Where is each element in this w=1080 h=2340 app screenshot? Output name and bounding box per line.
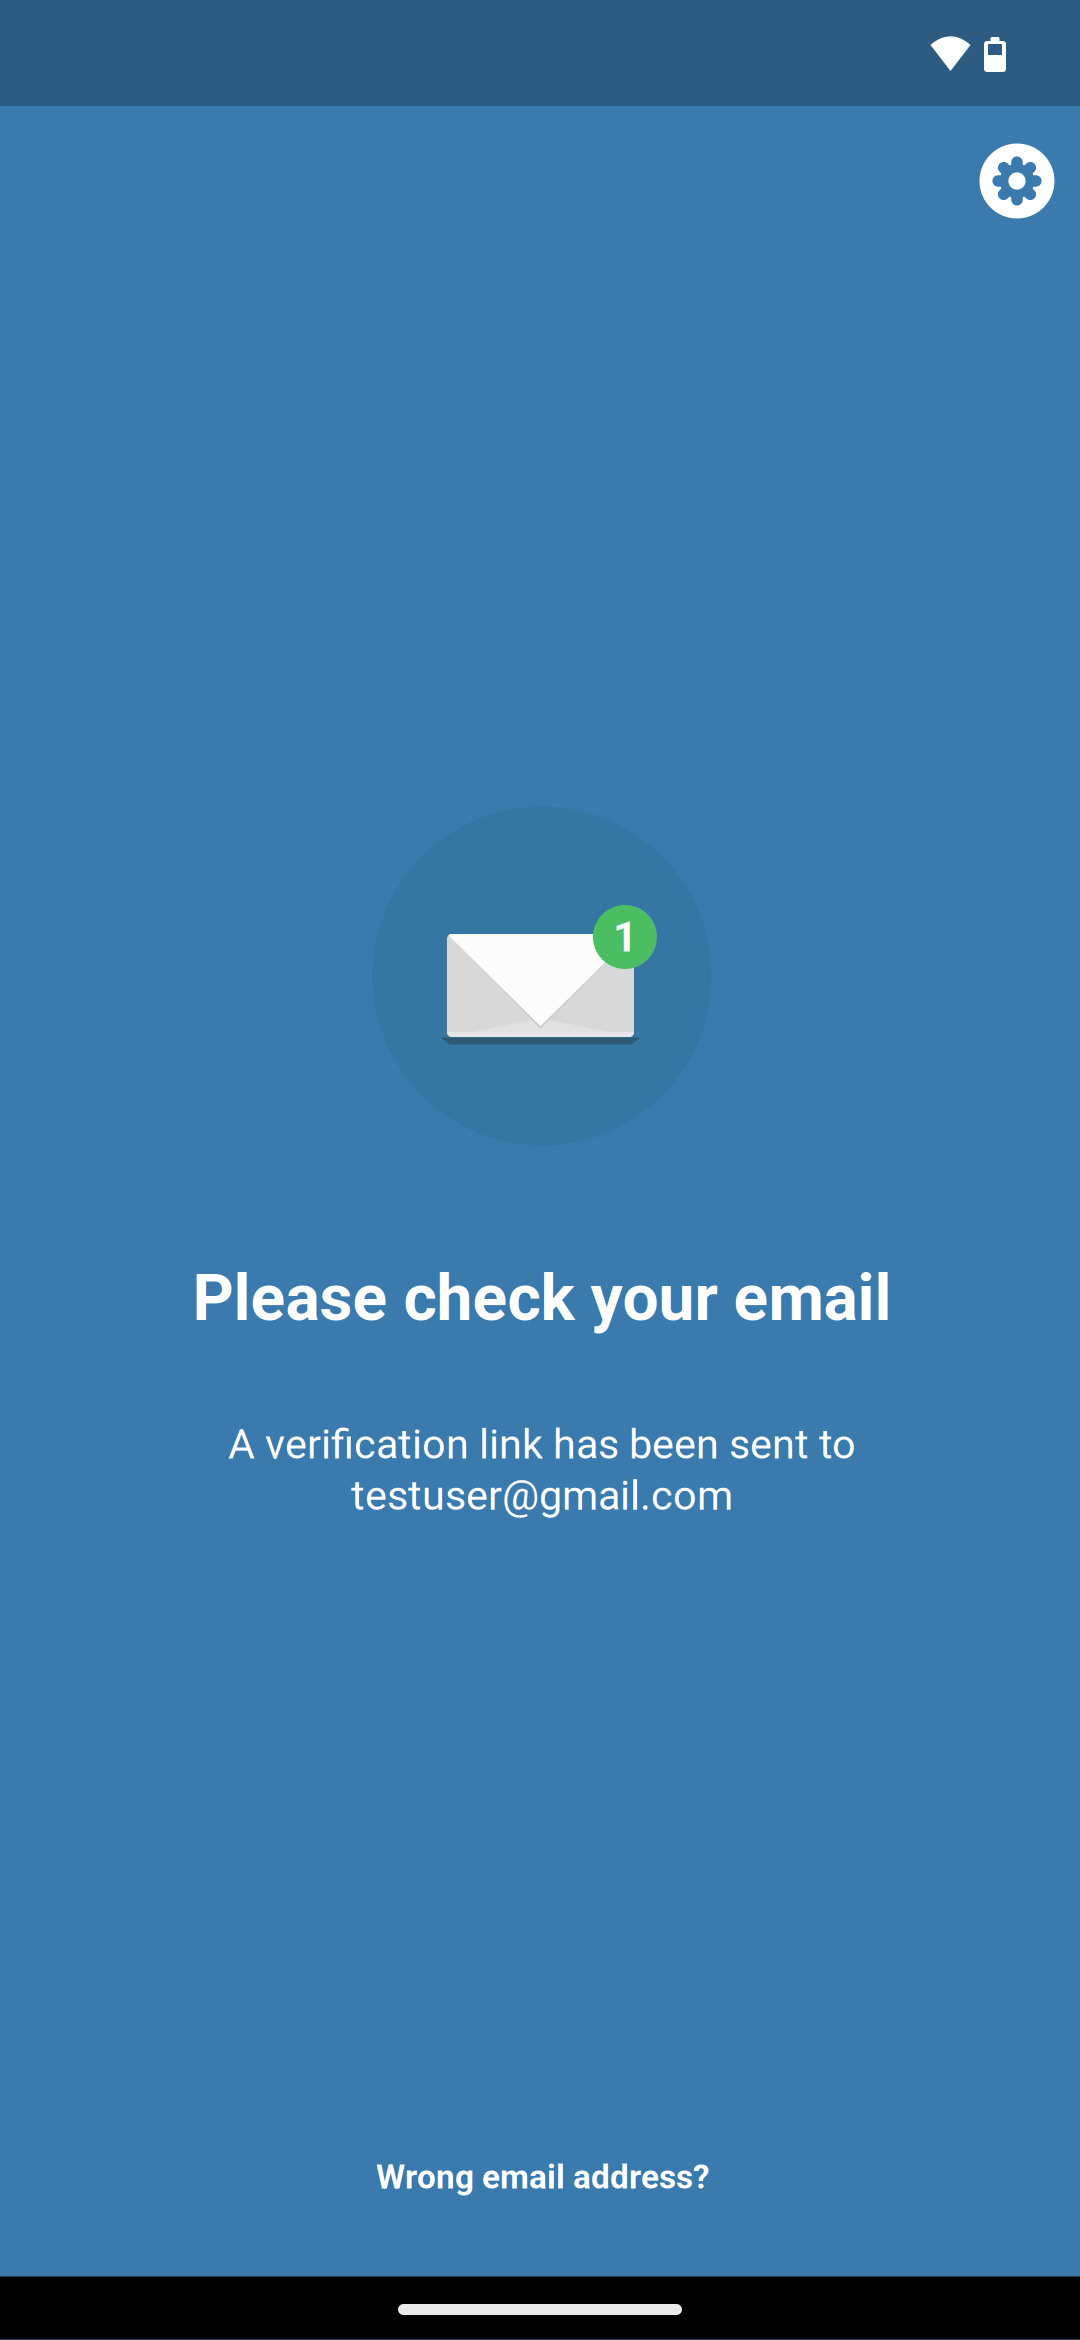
button[interactable]: Settings xyxy=(963,127,1071,235)
staticText: 1 xyxy=(613,912,637,962)
staticText: testuser@gmail.com xyxy=(351,1471,733,1520)
staticText: Wrong email address? xyxy=(376,2157,710,2197)
staticText: Please check your email xyxy=(192,1260,891,1335)
button[interactable]: Wrong email address? xyxy=(342,2137,744,2217)
staticText: A verification link has been sent to xyxy=(228,1420,856,1468)
